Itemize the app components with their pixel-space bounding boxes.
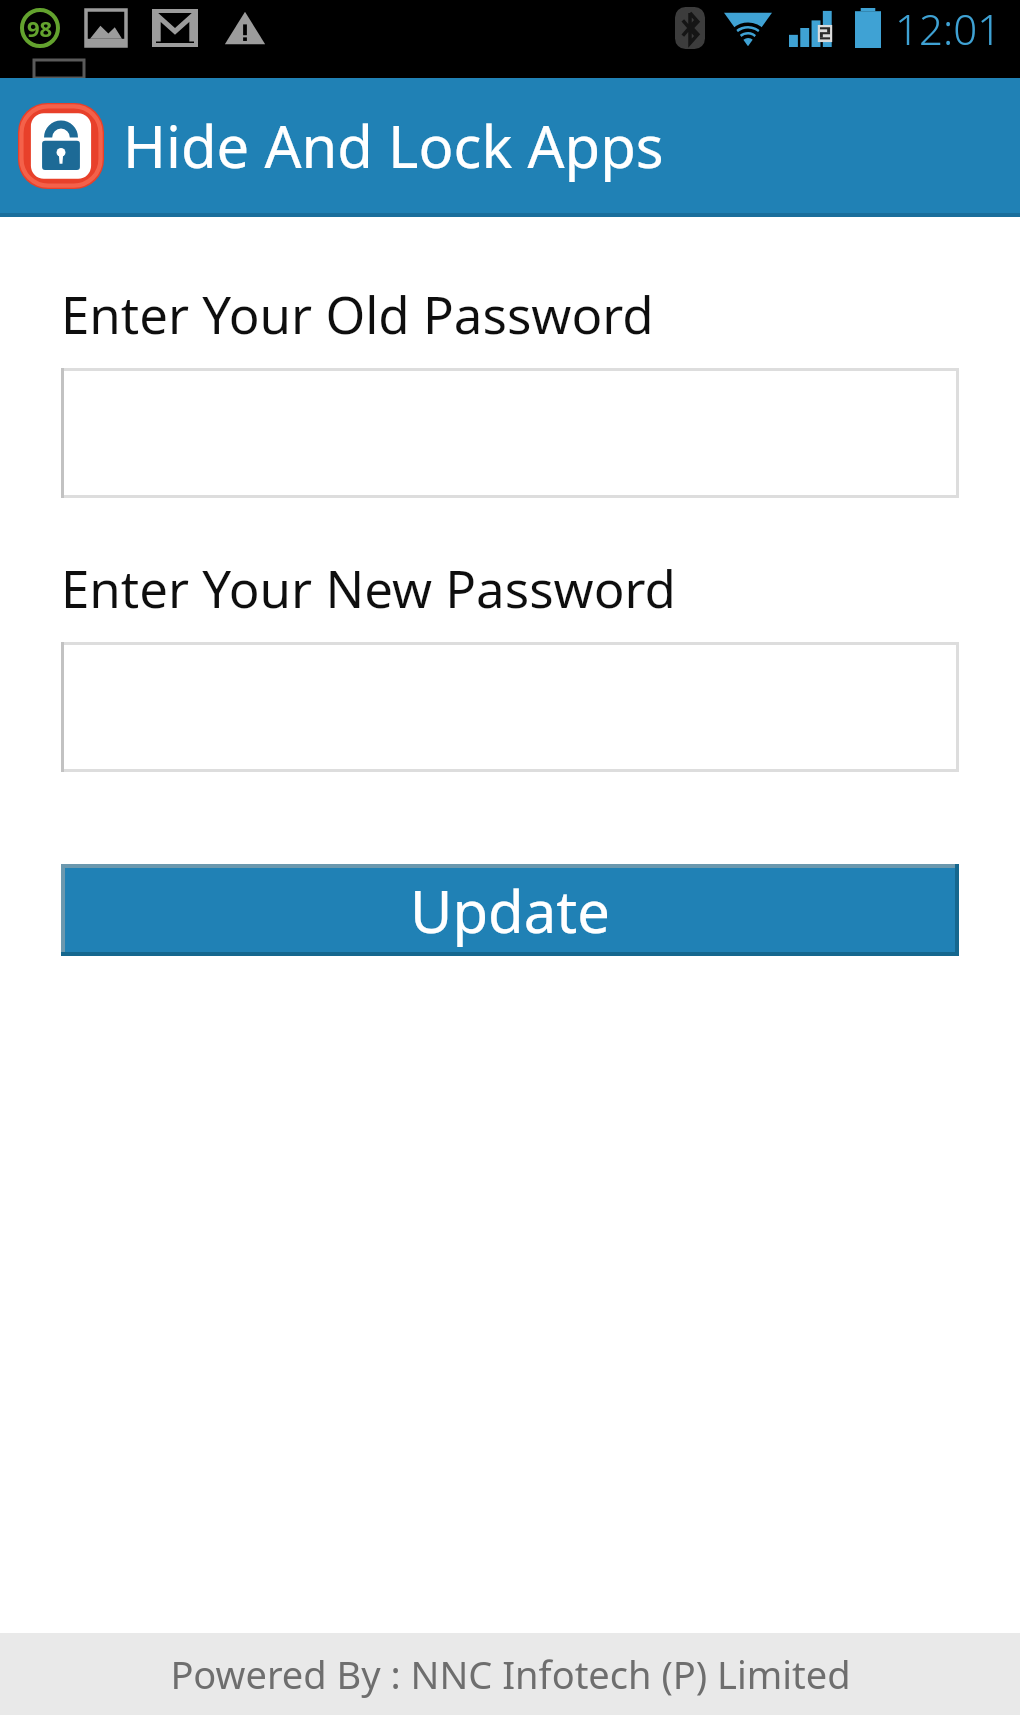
staticText: Powered By : NNC Infotech (P) Limited [170,1648,851,1700]
button[interactable]: Update [61,864,959,956]
staticText: Hide And Lock Apps [123,106,664,185]
button[interactable] [61,368,959,498]
staticText: Update [410,871,610,950]
staticText: Enter Your New Password [61,553,676,622]
staticText: 98 [27,13,53,43]
other: Hide and Lock Apps icon [18,103,104,189]
staticText: 12:01 [895,0,1002,56]
button[interactable] [61,642,959,772]
staticText: Enter Your Old Password [61,279,654,348]
